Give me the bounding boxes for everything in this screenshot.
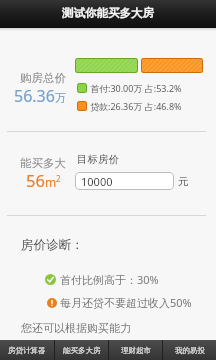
staticText: 房价诊断： — [21, 237, 84, 253]
staticText: 能买多大房 — [63, 346, 101, 355]
staticText: 56.36万 — [14, 85, 67, 107]
staticText: 理财超市 — [121, 346, 151, 355]
button[interactable]: 我的易投 — [163, 340, 216, 360]
staticText: 我的易投 — [175, 346, 205, 355]
staticText: 目标房价 — [77, 153, 119, 166]
staticText: 每月还贷不要超过收入50% — [60, 295, 192, 310]
staticText: 测试你能买多大房 — [62, 6, 154, 20]
staticText: 房贷计算器 — [8, 346, 46, 355]
staticText: 能买多大 — [20, 156, 66, 170]
staticText: 您还可以根据购买能力 — [21, 321, 131, 335]
staticText: 购房总价 — [20, 71, 66, 85]
staticText: 元 — [178, 175, 189, 188]
button[interactable]: 房贷计算器 — [0, 340, 54, 360]
staticText: 首付比例高于：30% — [60, 272, 159, 287]
button[interactable]: 能买多大房 — [55, 340, 108, 360]
button[interactable]: 10000 — [75, 172, 174, 190]
staticText: 首付:30.00万 占:53.2% — [90, 82, 182, 94]
staticText: 贷款:26.36万 占:46.8% — [90, 100, 182, 112]
staticText: 10000 — [81, 174, 113, 189]
staticText: 56m2 — [26, 169, 61, 191]
button[interactable]: 理财超市 — [109, 340, 162, 360]
